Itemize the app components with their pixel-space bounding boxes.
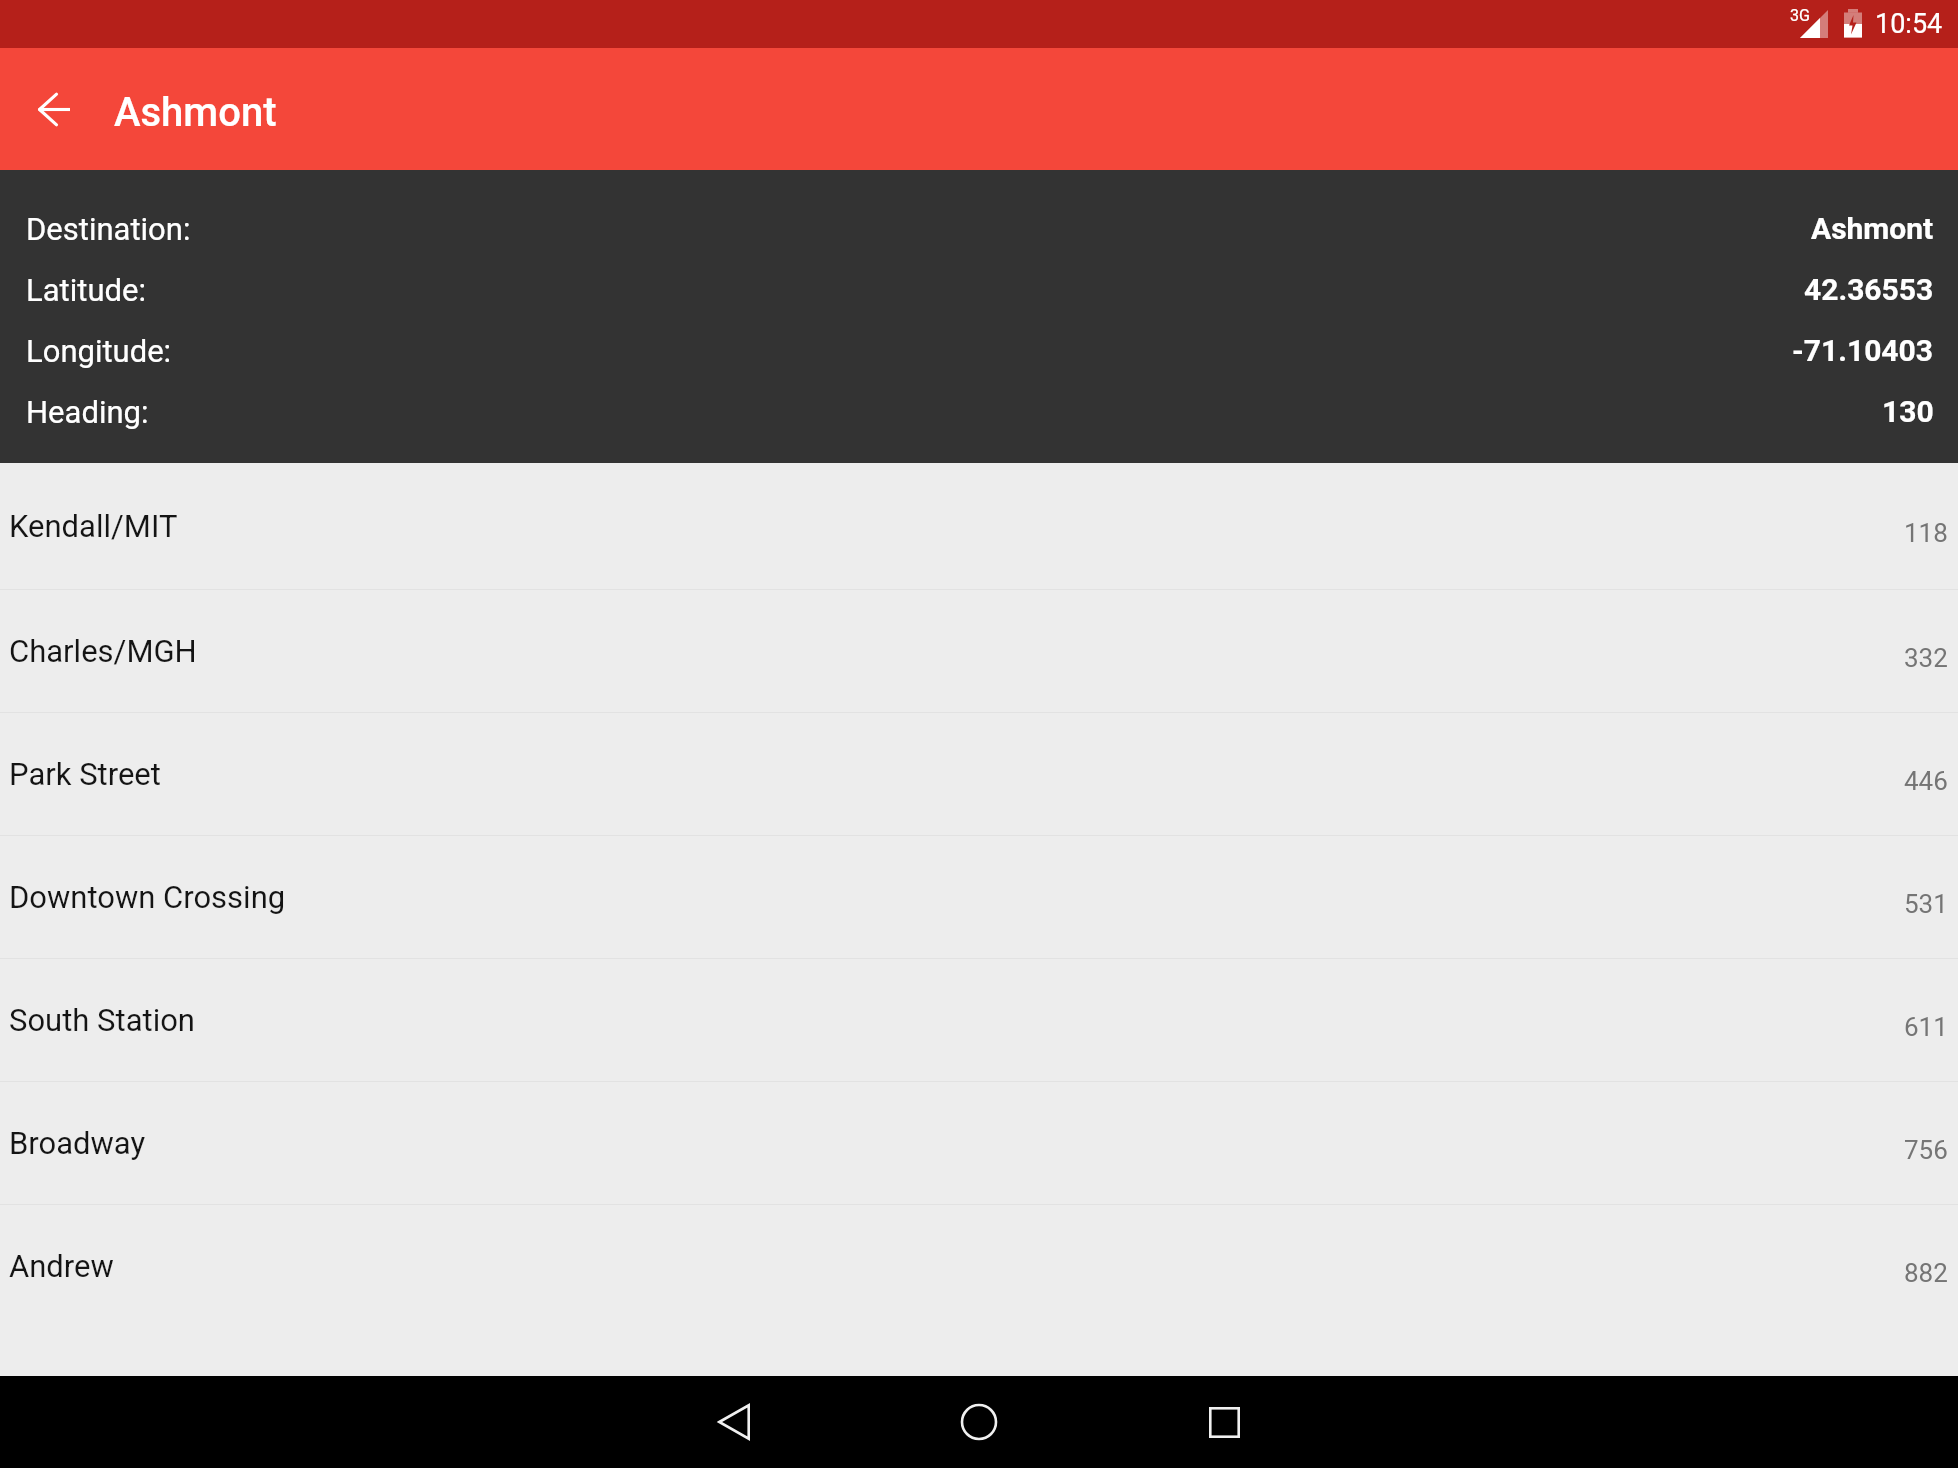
button[interactable]: Charles/MGH [0, 590, 1958, 712]
button[interactable]: Andrew [0, 1205, 1958, 1327]
button[interactable]: Broadway [0, 1082, 1958, 1204]
staticText: Andrew [9, 1248, 114, 1284]
button[interactable]: Kendall/MIT [0, 463, 1958, 589]
staticText: Charles/MGH [9, 633, 197, 669]
staticText: 611 [1904, 1012, 1948, 1042]
staticText: Longitude: [26, 333, 172, 369]
button[interactable]: Downtown Crossing [0, 836, 1958, 958]
staticText: 882 [1904, 1258, 1948, 1288]
staticText: 10:54 [1875, 8, 1943, 40]
staticText: 118 [1904, 518, 1948, 548]
staticText: Park Street [9, 756, 161, 792]
button[interactable]: Recents [1176, 1376, 1272, 1468]
staticText: 130 [1882, 394, 1934, 429]
staticText: Downtown Crossing [9, 879, 286, 915]
staticText: -71.10403 [1792, 333, 1934, 368]
staticText: Latitude: [26, 272, 146, 308]
button[interactable]: Back [0, 48, 108, 170]
staticText: Destination: [26, 211, 191, 247]
staticText: 756 [1904, 1135, 1948, 1165]
staticText: 42.36553 [1804, 272, 1934, 307]
button[interactable]: Back [686, 1376, 782, 1468]
staticText: Broadway [9, 1125, 146, 1161]
button[interactable]: Park Street [0, 713, 1958, 835]
button[interactable]: South Station [0, 959, 1958, 1081]
staticText: South Station [9, 1002, 195, 1038]
button[interactable]: Home [931, 1376, 1027, 1468]
staticText: 531 [1904, 889, 1948, 919]
staticText: 446 [1904, 766, 1948, 796]
staticText: Ashmont [114, 89, 277, 136]
staticText: Heading: [26, 394, 149, 430]
staticText: 3G [1790, 6, 1810, 25]
staticText: Kendall/MIT [9, 508, 178, 544]
staticText: 332 [1904, 643, 1948, 673]
staticText: Ashmont [1811, 211, 1934, 246]
